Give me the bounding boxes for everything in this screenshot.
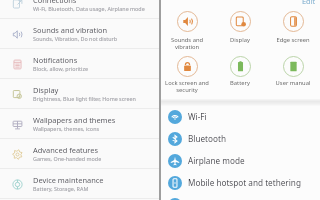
button[interactable]: Sounds and vibration: [161, 10, 213, 55]
staticText: Sounds and vibration: [161, 36, 213, 51]
button[interactable]: User manual: [267, 55, 319, 100]
staticText: Sounds and vibration: [33, 25, 108, 35]
button[interactable]: Airplane mode: [161, 150, 320, 172]
staticText: Display: [214, 36, 266, 44]
button[interactable]: Advanced features: [0, 138, 159, 168]
staticText: Sounds, Vibration, Do not disturb: [33, 35, 118, 42]
staticText: Wi-Fi: [188, 111, 207, 122]
button[interactable]: Sounds and vibration: [0, 18, 159, 48]
button[interactable]: Connections: [0, 0, 159, 18]
staticText: Connections: [33, 0, 77, 5]
button[interactable]: Mobile hotspot and tethering: [161, 172, 320, 194]
staticText: Edge screen: [267, 36, 319, 44]
staticText: Lock screen and security: [161, 79, 213, 94]
button[interactable]: Edit: [302, 0, 316, 6]
button[interactable]: Device maintenance: [0, 168, 159, 198]
staticText: Wi-Fi, Bluetooth, Data usage, Airplane m…: [33, 5, 145, 12]
button[interactable]: Lock screen and security: [161, 55, 213, 100]
button[interactable]: Display: [0, 78, 159, 108]
staticText: Battery: [214, 79, 266, 87]
button[interactable]: Display: [214, 10, 266, 55]
staticText: Games, One-handed mode: [33, 155, 102, 162]
staticText: User manual: [267, 79, 319, 87]
button[interactable]: Bluetooth: [161, 128, 320, 150]
staticText: Device maintenance: [33, 175, 104, 185]
staticText: Airplane mode: [188, 155, 245, 166]
staticText: Battery, Storage, RAM: [33, 185, 89, 192]
button[interactable]: Data usage: [161, 194, 320, 200]
staticText: Brightness, Blue light filter, Home scre…: [33, 95, 136, 102]
staticText: Wallpapers, themes, icons: [33, 125, 100, 132]
button[interactable]: Edge screen: [267, 10, 319, 55]
staticText: Advanced features: [33, 145, 99, 155]
staticText: Bluetooth: [188, 133, 226, 144]
staticText: Block, allow, prioritize: [33, 65, 89, 72]
button[interactable]: Notifications: [0, 48, 159, 78]
staticText: Notifications: [33, 55, 78, 65]
button[interactable]: Battery: [214, 55, 266, 100]
staticText: Wallpapers and themes: [33, 115, 116, 125]
button[interactable]: Wallpapers and themes: [0, 108, 159, 138]
staticText: Mobile hotspot and tethering: [188, 177, 301, 188]
staticText: Display: [33, 85, 59, 95]
button[interactable]: Wi-Fi: [161, 106, 320, 128]
